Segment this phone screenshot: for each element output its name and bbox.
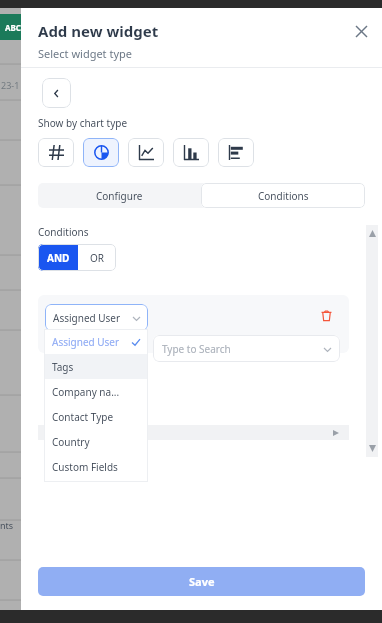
staticText: Country bbox=[52, 435, 90, 449]
button[interactable]: Back bbox=[42, 78, 71, 108]
staticText: Tags bbox=[52, 360, 74, 374]
staticText: Company na... bbox=[52, 385, 120, 399]
staticText: 23-1 bbox=[1, 79, 20, 91]
button[interactable]: Company na... bbox=[44, 379, 148, 404]
button[interactable]: Custom Fields bbox=[44, 454, 148, 479]
staticText: ABC bbox=[5, 22, 21, 33]
button[interactable]: AND bbox=[38, 244, 78, 271]
button[interactable]: Chart type bbox=[128, 138, 164, 167]
button[interactable]: Contact Type bbox=[44, 404, 148, 429]
staticText: nts bbox=[0, 519, 14, 531]
button[interactable]: Type to Search bbox=[153, 335, 340, 362]
button[interactable]: Chart type bbox=[173, 138, 209, 167]
staticText: OR bbox=[90, 251, 105, 265]
button[interactable]: Conditions bbox=[201, 183, 365, 208]
button[interactable]: Delete condition bbox=[317, 306, 335, 324]
staticText: Type to Search bbox=[162, 342, 231, 356]
staticText: AND bbox=[47, 251, 70, 265]
button[interactable]: Assigned User bbox=[44, 329, 148, 354]
button[interactable]: Country bbox=[44, 429, 148, 454]
staticText: Add new widget bbox=[38, 21, 159, 41]
staticText: Save bbox=[189, 574, 215, 589]
button[interactable]: Close bbox=[348, 18, 374, 44]
staticText: Contact Type bbox=[52, 410, 114, 424]
button[interactable]: Chart type bbox=[83, 138, 119, 167]
staticText: Conditions bbox=[258, 189, 309, 203]
staticText: Assigned User bbox=[52, 335, 120, 349]
staticText: Configure bbox=[96, 189, 143, 203]
button[interactable]: Chart type bbox=[218, 138, 254, 167]
button[interactable]: Assigned User bbox=[45, 304, 148, 331]
button[interactable]: OR bbox=[78, 244, 116, 271]
staticText: Show by chart type bbox=[38, 116, 128, 130]
button[interactable]: Save bbox=[38, 567, 365, 596]
button[interactable]: Configure bbox=[38, 183, 201, 208]
staticText: Select widget type bbox=[38, 46, 132, 61]
staticText: Assigned User bbox=[53, 311, 121, 325]
button[interactable]: Tags bbox=[44, 354, 148, 379]
staticText: Conditions bbox=[38, 225, 89, 239]
staticText: Custom Fields bbox=[52, 460, 118, 474]
button[interactable]: Chart type bbox=[38, 138, 74, 167]
